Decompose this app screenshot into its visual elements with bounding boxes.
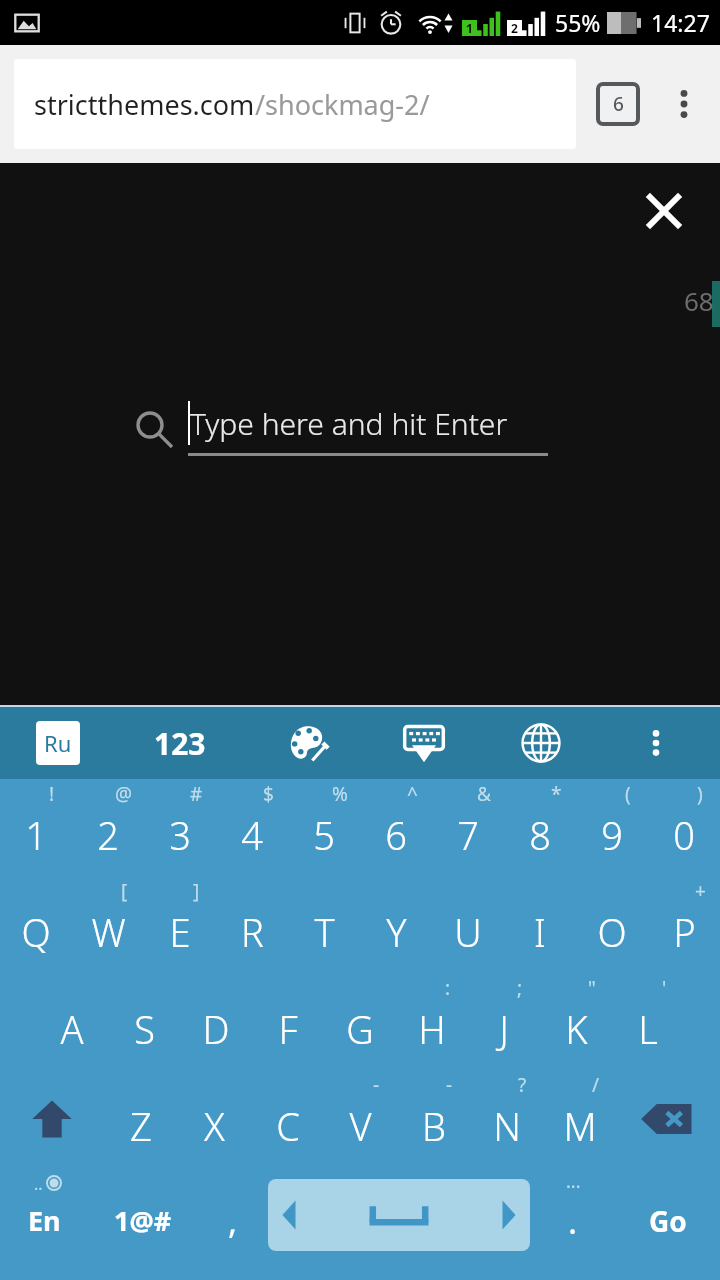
button[interactable]: % xyxy=(288,779,360,876)
staticText: 55% xyxy=(555,7,601,38)
staticText: Ru xyxy=(44,728,72,758)
staticText: W xyxy=(91,906,126,958)
button[interactable]: ^ xyxy=(360,779,432,876)
button[interactable]: ? xyxy=(470,1070,543,1167)
staticText: 9 xyxy=(601,809,623,861)
button[interactable]: $ xyxy=(216,779,288,876)
staticText: 6 xyxy=(385,809,407,861)
button[interactable]: Space xyxy=(268,1179,530,1251)
staticText: Type here and hit Enter xyxy=(190,403,508,444)
button[interactable]: S xyxy=(108,973,180,1070)
button[interactable]: More options xyxy=(662,82,706,126)
staticText: " xyxy=(588,975,596,1001)
staticText: 3 xyxy=(169,809,191,861)
staticText: I xyxy=(534,906,546,958)
staticText: . xyxy=(568,1198,578,1244)
button[interactable]: , xyxy=(198,1167,268,1262)
button[interactable]: D xyxy=(180,973,252,1070)
staticText: Go xyxy=(649,1202,687,1240)
staticText: ] xyxy=(193,878,200,904)
button[interactable]: strictthemes.com xyxy=(14,59,576,149)
staticText: M xyxy=(563,1100,597,1152)
button[interactable]: Tabs xyxy=(598,84,638,124)
staticText: V xyxy=(349,1100,372,1152)
staticText: C xyxy=(276,1100,300,1152)
staticText: B xyxy=(422,1100,446,1152)
button[interactable]: Hide keyboard xyxy=(398,717,450,769)
button[interactable]: & xyxy=(432,779,504,876)
button[interactable]: - xyxy=(324,1070,397,1167)
button[interactable]: F xyxy=(252,973,324,1070)
button[interactable]: # xyxy=(144,779,216,876)
button[interactable]: O xyxy=(576,876,648,973)
staticText: + xyxy=(695,878,706,904)
staticText: 5 xyxy=(313,809,335,861)
staticText: 7 xyxy=(457,809,479,861)
staticText: T xyxy=(314,906,335,958)
staticText: / xyxy=(592,1072,600,1098)
button[interactable]: I xyxy=(504,876,576,973)
staticText: [ xyxy=(121,878,128,904)
button[interactable]: Backspace xyxy=(616,1070,720,1167)
staticText: - xyxy=(446,1072,453,1098)
staticText: P xyxy=(673,906,696,958)
staticText: ... xyxy=(566,1169,581,1194)
button[interactable]: Type here and hit Enter xyxy=(134,401,554,456)
button[interactable]: Language xyxy=(515,717,567,769)
button[interactable]: Z xyxy=(104,1070,178,1167)
staticText: 1@# xyxy=(114,1202,172,1239)
button[interactable]: A xyxy=(36,973,108,1070)
staticText: G xyxy=(346,1003,374,1055)
button[interactable]: C xyxy=(251,1070,324,1167)
staticText: - xyxy=(373,1072,380,1098)
button[interactable]: U xyxy=(432,876,504,973)
button[interactable]: [ xyxy=(72,876,144,973)
button[interactable]: 123 xyxy=(144,713,216,774)
button[interactable]: ] xyxy=(144,876,216,973)
button[interactable]: ( xyxy=(576,779,648,876)
button[interactable]: 1@# xyxy=(88,1167,198,1262)
button[interactable]: X xyxy=(178,1070,251,1167)
staticText: .. xyxy=(34,1173,43,1195)
button[interactable]: @ xyxy=(72,779,144,876)
button[interactable]: Q xyxy=(0,876,72,973)
button[interactable]: Shift xyxy=(0,1070,104,1167)
button[interactable]: - xyxy=(397,1070,470,1167)
button[interactable]: / xyxy=(543,1070,616,1167)
button[interactable]: R xyxy=(216,876,288,973)
staticText: 68 xyxy=(684,283,714,318)
button[interactable]: ; xyxy=(468,973,540,1070)
staticText: E xyxy=(169,906,191,958)
button[interactable]: + xyxy=(648,876,720,973)
staticText: strictthemes.com xyxy=(34,86,255,123)
staticText: 2 xyxy=(97,809,119,861)
button[interactable]: More xyxy=(632,719,680,767)
staticText: S xyxy=(134,1003,155,1055)
staticText: 14:27 xyxy=(651,7,710,38)
button[interactable]: ! xyxy=(0,779,72,876)
staticText: % xyxy=(332,781,348,807)
button[interactable]: Go xyxy=(616,1167,720,1262)
staticText: ( xyxy=(625,781,631,807)
staticText: /shockmag-2/ xyxy=(255,86,430,123)
button[interactable]: " xyxy=(540,973,612,1070)
button[interactable]: : xyxy=(396,973,468,1070)
button[interactable]: Y xyxy=(360,876,432,973)
staticText: H xyxy=(418,1003,446,1055)
button[interactable]: T xyxy=(288,876,360,973)
button[interactable]: ) xyxy=(648,779,720,876)
staticText: 4 xyxy=(241,809,263,861)
staticText: A xyxy=(60,1003,84,1055)
staticText: D xyxy=(202,1003,230,1055)
button[interactable]: ' xyxy=(612,973,684,1070)
staticText: F xyxy=(278,1003,298,1055)
button[interactable]: Close xyxy=(636,183,692,239)
staticText: Y xyxy=(386,906,407,958)
staticText: X xyxy=(204,1100,225,1152)
button[interactable]: ... xyxy=(530,1167,616,1262)
button[interactable]: Theme xyxy=(281,717,333,769)
button[interactable]: G xyxy=(324,973,396,1070)
button[interactable]: .. xyxy=(0,1167,88,1262)
button[interactable]: * xyxy=(504,779,576,876)
button[interactable]: Ru xyxy=(36,721,80,765)
